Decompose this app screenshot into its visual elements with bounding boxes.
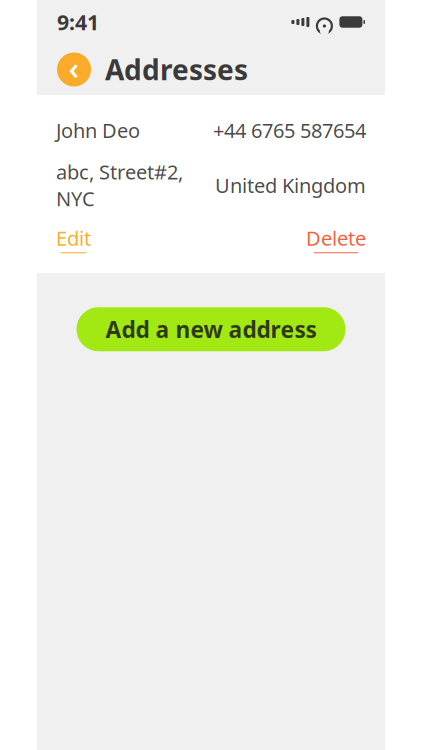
staticText: John Deo xyxy=(56,117,140,144)
staticText: ‹ xyxy=(68,47,79,88)
staticText: United Kingdom xyxy=(215,172,366,198)
button[interactable]: Add a new address xyxy=(76,307,345,351)
button[interactable]: Edit xyxy=(56,225,91,253)
staticText: Addresses xyxy=(105,51,248,88)
staticText: Add a new address xyxy=(105,314,316,344)
staticText: +44 6765 587654 xyxy=(213,117,366,144)
button[interactable]: Back xyxy=(57,52,91,86)
staticText: 9:41 xyxy=(57,8,99,36)
button[interactable]: Delete xyxy=(306,225,366,253)
staticText: Delete xyxy=(306,225,366,251)
staticText: Edit xyxy=(56,225,91,251)
staticText: abc, Street#2, NYC xyxy=(56,159,183,212)
